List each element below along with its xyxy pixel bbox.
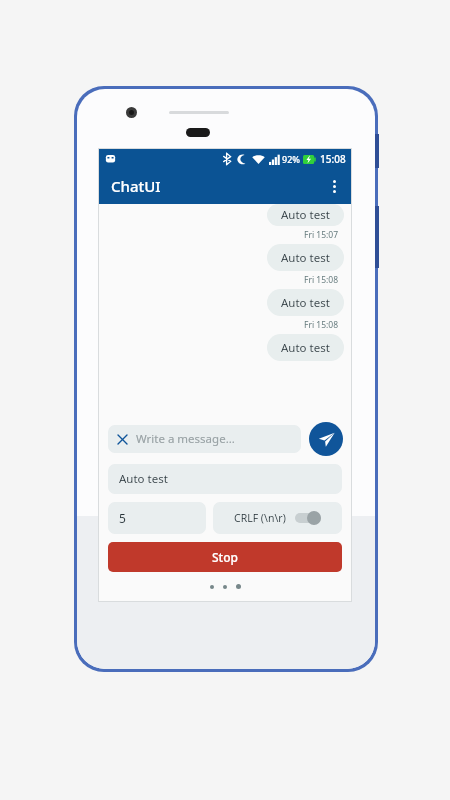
staticText: Auto test — [281, 207, 330, 223]
button[interactable]: CRLF (\n\r) — [213, 502, 342, 534]
button[interactable]: Clear message — [108, 425, 301, 453]
staticText: Fri 15:08 — [304, 274, 339, 286]
staticText: Write a message... — [136, 431, 235, 447]
staticText: Auto test — [281, 250, 330, 266]
staticText: Fri 15:07 — [304, 229, 339, 241]
button[interactable]: Clear message — [115, 432, 129, 446]
button[interactable]: Auto test — [267, 204, 344, 226]
button[interactable]: Stop — [108, 542, 342, 572]
button[interactable]: Auto test — [267, 244, 344, 271]
staticText: 5 — [119, 510, 126, 526]
staticText: ChatUI — [111, 176, 161, 196]
staticText: 15:08 — [320, 152, 346, 166]
button[interactable]: More options — [317, 169, 351, 203]
button[interactable]: Send — [309, 422, 343, 456]
staticText: Fri 15:08 — [304, 319, 339, 331]
staticText: Auto test — [281, 295, 330, 311]
button[interactable]: Auto test — [108, 464, 342, 494]
button[interactable]: Auto test — [267, 334, 344, 361]
staticText: 92% — [282, 153, 300, 165]
staticText: Auto test — [119, 471, 168, 487]
staticText: CRLF (\n\r) — [234, 511, 286, 525]
staticText: Stop — [212, 549, 238, 565]
staticText: Auto test — [281, 340, 330, 356]
button[interactable]: Auto test — [267, 289, 344, 316]
button[interactable]: 5 — [108, 502, 206, 534]
